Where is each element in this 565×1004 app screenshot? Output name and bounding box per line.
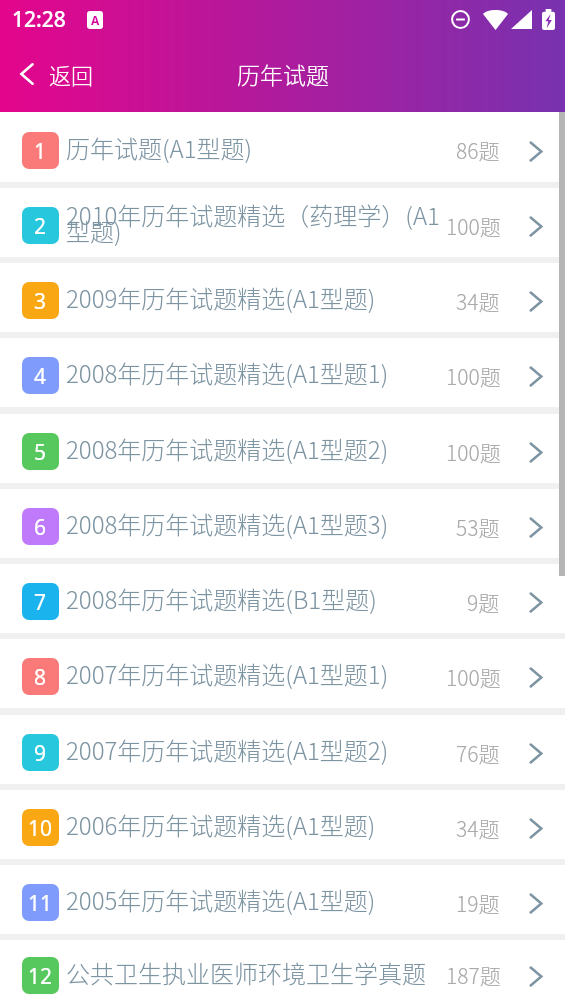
other: Open (529, 141, 543, 162)
button[interactable]: 5 (0, 414, 565, 483)
other: Signal (511, 10, 532, 29)
button[interactable]: 1 (0, 112, 565, 182)
staticText: 2008年历年试题精选(B1型题) (66, 581, 377, 616)
button[interactable]: 8 (0, 639, 565, 708)
other: Battery (542, 9, 555, 30)
button[interactable]: 9 (0, 715, 565, 784)
staticText: 6 (34, 513, 47, 542)
staticText: 53题 (456, 512, 500, 542)
staticText: 187题 (446, 960, 500, 990)
staticText: 返回 (49, 58, 94, 90)
other: Open (529, 893, 543, 914)
other: Open (529, 366, 543, 387)
button[interactable]: 3 (0, 263, 565, 332)
staticText: 4 (34, 362, 47, 391)
other: Open (529, 216, 543, 237)
staticText: 7 (34, 588, 47, 617)
staticText: 19题 (456, 888, 500, 918)
staticText: 100题 (446, 211, 500, 241)
other: Open (529, 291, 543, 312)
button[interactable]: 4 (0, 338, 565, 407)
button[interactable]: 12 (0, 940, 565, 1004)
staticText: 历年试题(A1型题) (66, 130, 253, 165)
staticText: A (91, 12, 100, 28)
staticText: 34题 (456, 286, 500, 316)
other: Open (529, 592, 543, 613)
other: Open (529, 966, 543, 987)
other: Open (529, 517, 543, 538)
staticText: 12:28 (12, 5, 66, 34)
button[interactable]: 11 (0, 865, 565, 934)
staticText: 2008年历年试题精选(A1型题2) (66, 431, 389, 466)
staticText: 9题 (467, 587, 500, 617)
other: Do not disturb (451, 10, 470, 29)
button[interactable]: 2 (0, 188, 565, 257)
staticText: 2008年历年试题精选(A1型题1) (66, 355, 389, 390)
staticText: 34题 (456, 813, 500, 843)
staticText: 历年试题 (237, 57, 329, 90)
staticText: 2 (34, 212, 47, 241)
staticText: 86题 (456, 135, 500, 165)
staticText: 9 (34, 739, 47, 768)
button[interactable]: 10 (0, 790, 565, 859)
staticText: 100题 (446, 662, 500, 692)
staticText: 1 (34, 137, 47, 166)
button[interactable]: 7 (0, 564, 565, 633)
staticText: 76题 (456, 738, 500, 768)
other: Open (529, 818, 543, 839)
staticText: 2007年历年试题精选(A1型题1) (66, 656, 389, 691)
staticText: 2009年历年试题精选(A1型题) (66, 280, 376, 315)
other: Wi-Fi (483, 10, 508, 30)
staticText: 12 (28, 962, 53, 991)
staticText: 2010年历年试题精选（药理学）(A1型题) (66, 197, 446, 248)
staticText: 2005年历年试题精选(A1型题) (66, 882, 376, 917)
staticText: 3 (34, 287, 47, 316)
staticText: 5 (34, 438, 47, 467)
staticText: 10 (28, 814, 53, 843)
staticText: 2008年历年试题精选(A1型题3) (66, 506, 389, 541)
button[interactable]: 6 (0, 489, 565, 558)
other: Open (529, 743, 543, 764)
other: Open (529, 667, 543, 688)
staticText: 2006年历年试题精选(A1型题) (66, 807, 376, 842)
staticText: 8 (34, 663, 47, 692)
staticText: 100题 (446, 437, 500, 467)
staticText: 2007年历年试题精选(A1型题2) (66, 732, 389, 767)
staticText: 公共卫生执业医师环境卫生学真题 (66, 955, 426, 990)
other: Open (529, 442, 543, 463)
button[interactable]: 返回 (0, 37, 108, 111)
staticText: 100题 (446, 361, 500, 391)
staticText: 11 (28, 889, 53, 918)
